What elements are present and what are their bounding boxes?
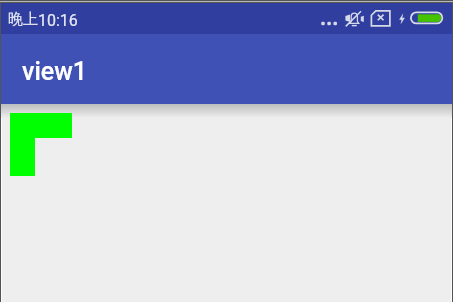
other: Status icons [1, 3, 452, 34]
staticText: 10:16 [38, 11, 78, 30]
button[interactable]: view1 [1, 34, 452, 104]
staticText: 晚上 [8, 10, 38, 29]
staticText: view1 [22, 57, 87, 86]
button[interactable]: Green L shape [10, 113, 72, 176]
